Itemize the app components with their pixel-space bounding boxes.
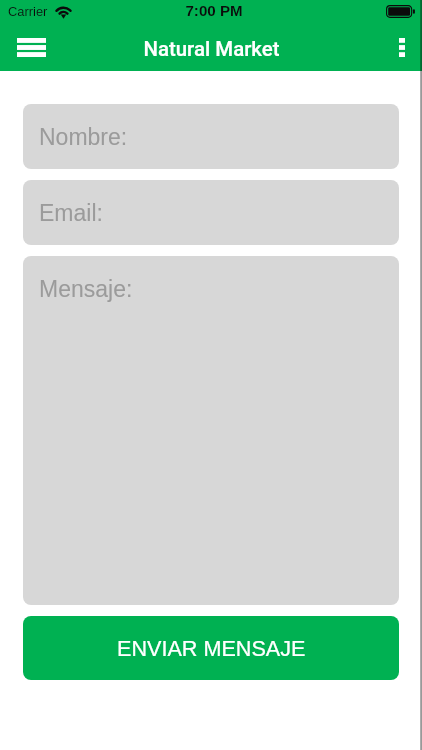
button[interactable]: Nombre: xyxy=(23,104,399,169)
staticText: Email: xyxy=(39,200,103,226)
staticText: Carrier xyxy=(8,4,48,18)
staticText: Nombre: xyxy=(39,124,128,150)
staticText: 7:00 PM xyxy=(185,2,243,19)
staticText: Mensaje: xyxy=(39,276,133,302)
button[interactable]: Email: xyxy=(23,180,399,245)
button[interactable]: Mensaje: xyxy=(23,256,399,605)
button[interactable]: ENVIAR MENSAJE xyxy=(23,616,399,680)
staticText: ENVIAR MENSAJE xyxy=(117,636,306,660)
button[interactable]: More options xyxy=(381,23,422,72)
staticText: Natural Market xyxy=(143,37,280,61)
button[interactable]: Menu xyxy=(0,23,62,72)
